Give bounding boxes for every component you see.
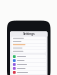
button[interactable]: > <box>11 59 46 62</box>
button[interactable]: > <box>11 37 46 40</box>
button[interactable]: > <box>11 47 46 50</box>
button[interactable]: > <box>11 63 46 66</box>
button[interactable]: > <box>11 43 46 46</box>
button[interactable]: > <box>11 55 46 58</box>
button[interactable]: > <box>11 67 46 70</box>
staticText: Settings <box>23 32 34 36</box>
button[interactable]: > <box>11 70 46 74</box>
button[interactable]: > <box>11 40 46 43</box>
button[interactable]: > <box>11 50 46 53</box>
